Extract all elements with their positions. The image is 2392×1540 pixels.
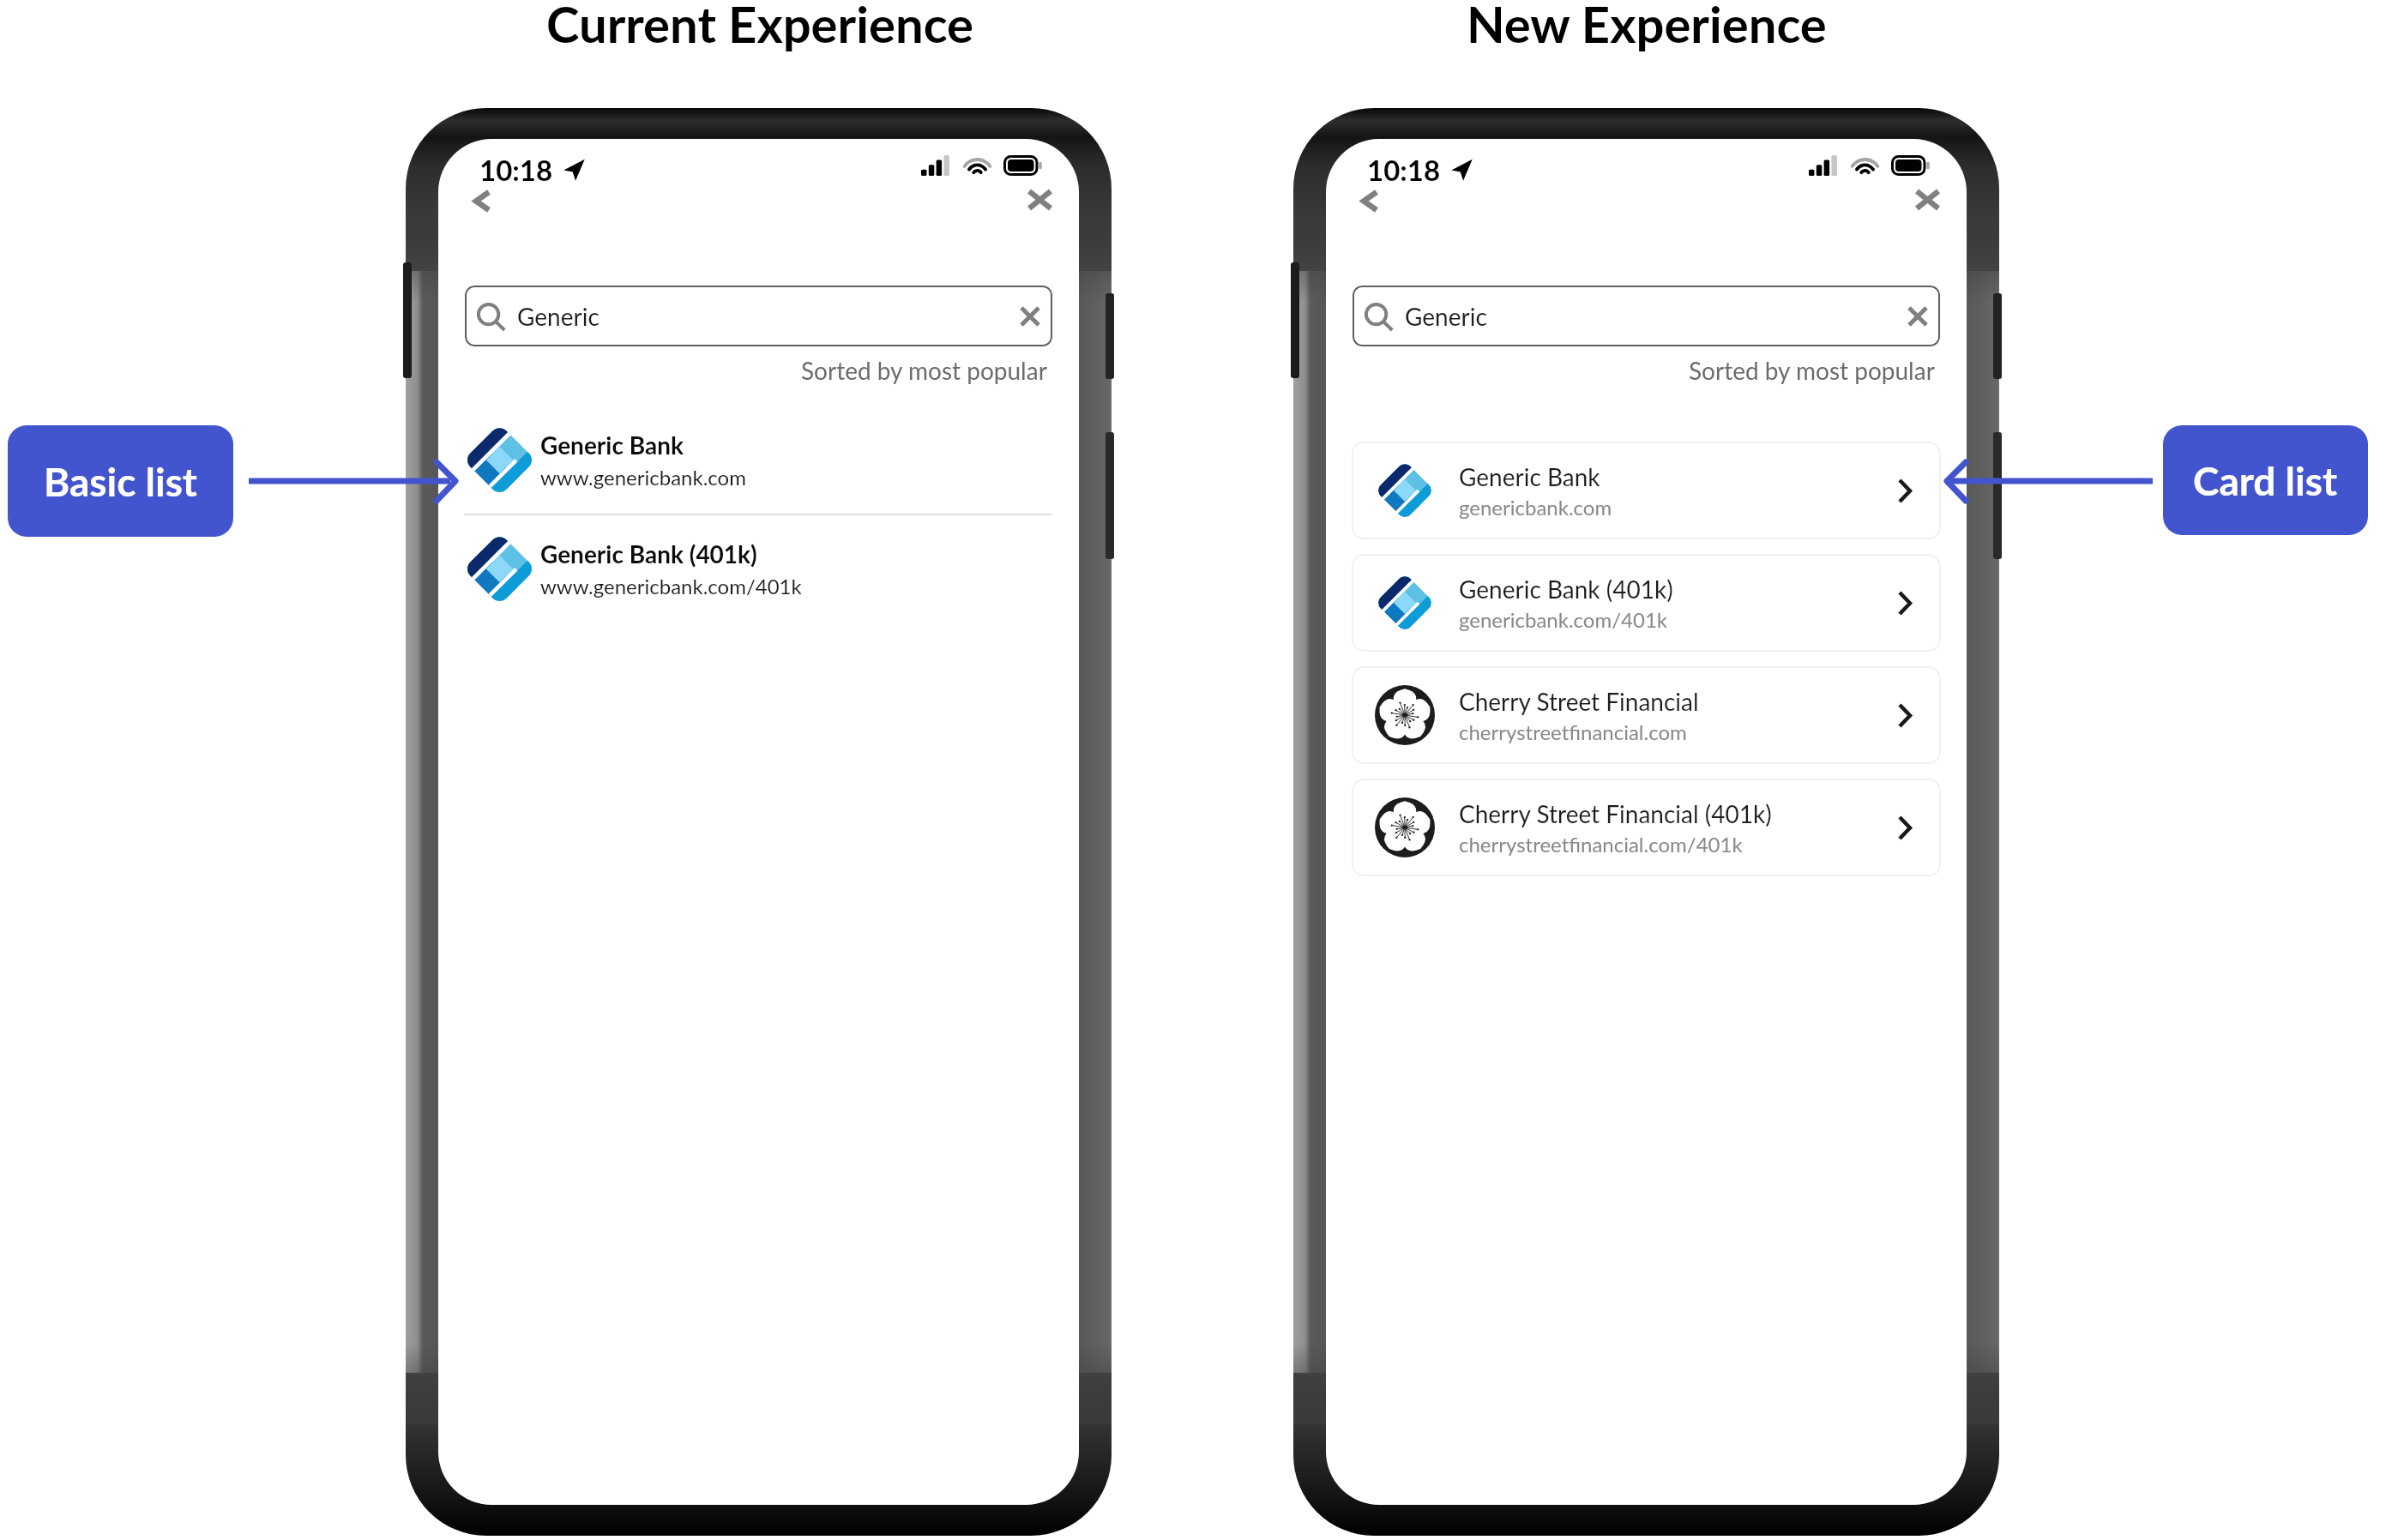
staticText: cherrystreetfinancial.com [1459,719,1687,744]
button[interactable]: Close [1895,177,1959,223]
staticText: Sorted by most popular [1689,356,1935,385]
staticText: Cherry Street Financial [1459,687,1699,716]
button[interactable]: Generic Bank [438,406,1079,514]
staticText: cherrystreetfinancial.com/401k [1459,832,1743,857]
button[interactable]: Clear search [1899,298,1937,335]
staticText: www.genericbank.com/401k [540,574,802,599]
staticText: Cherry Street Financial (401k) [1459,799,1772,828]
staticText: 10:18 [1367,153,1441,187]
staticText: genericbank.com/401k [1459,607,1667,632]
button[interactable]: Generic [465,286,1052,346]
staticText: www.genericbank.com [540,465,746,490]
button[interactable]: Card list [2163,425,2368,535]
staticText: Generic Bank [540,430,684,460]
staticText: New Experience [1467,0,1827,54]
button[interactable]: Generic Bank (401k) [438,515,1079,623]
staticText: Generic [517,302,600,331]
staticText: Generic Bank (401k) [540,539,757,568]
staticText: Basic list [44,458,197,505]
staticText: Generic Bank [1459,462,1600,491]
button[interactable]: Generic Bank [1352,442,1941,539]
staticText: Sorted by most popular [801,356,1047,385]
button[interactable]: Close [1008,177,1071,223]
button[interactable]: Generic Bank (401k) [1352,554,1941,652]
staticText: Card list [2193,457,2338,504]
staticText: Current Experience [546,0,974,54]
staticText: Generic [1405,302,1487,331]
button[interactable]: Back [450,177,514,224]
button[interactable]: Clear search [1011,298,1049,335]
button[interactable]: Cherry Street Financial (401k) [1352,779,1941,876]
staticText: genericbank.com [1459,495,1612,520]
button[interactable]: Generic [1353,286,1940,346]
button[interactable]: Basic list [8,425,233,537]
button[interactable]: Back [1338,177,1401,224]
staticText: Generic Bank (401k) [1459,574,1673,604]
button[interactable]: Cherry Street Financial [1352,666,1941,764]
staticText: 10:18 [479,153,553,187]
